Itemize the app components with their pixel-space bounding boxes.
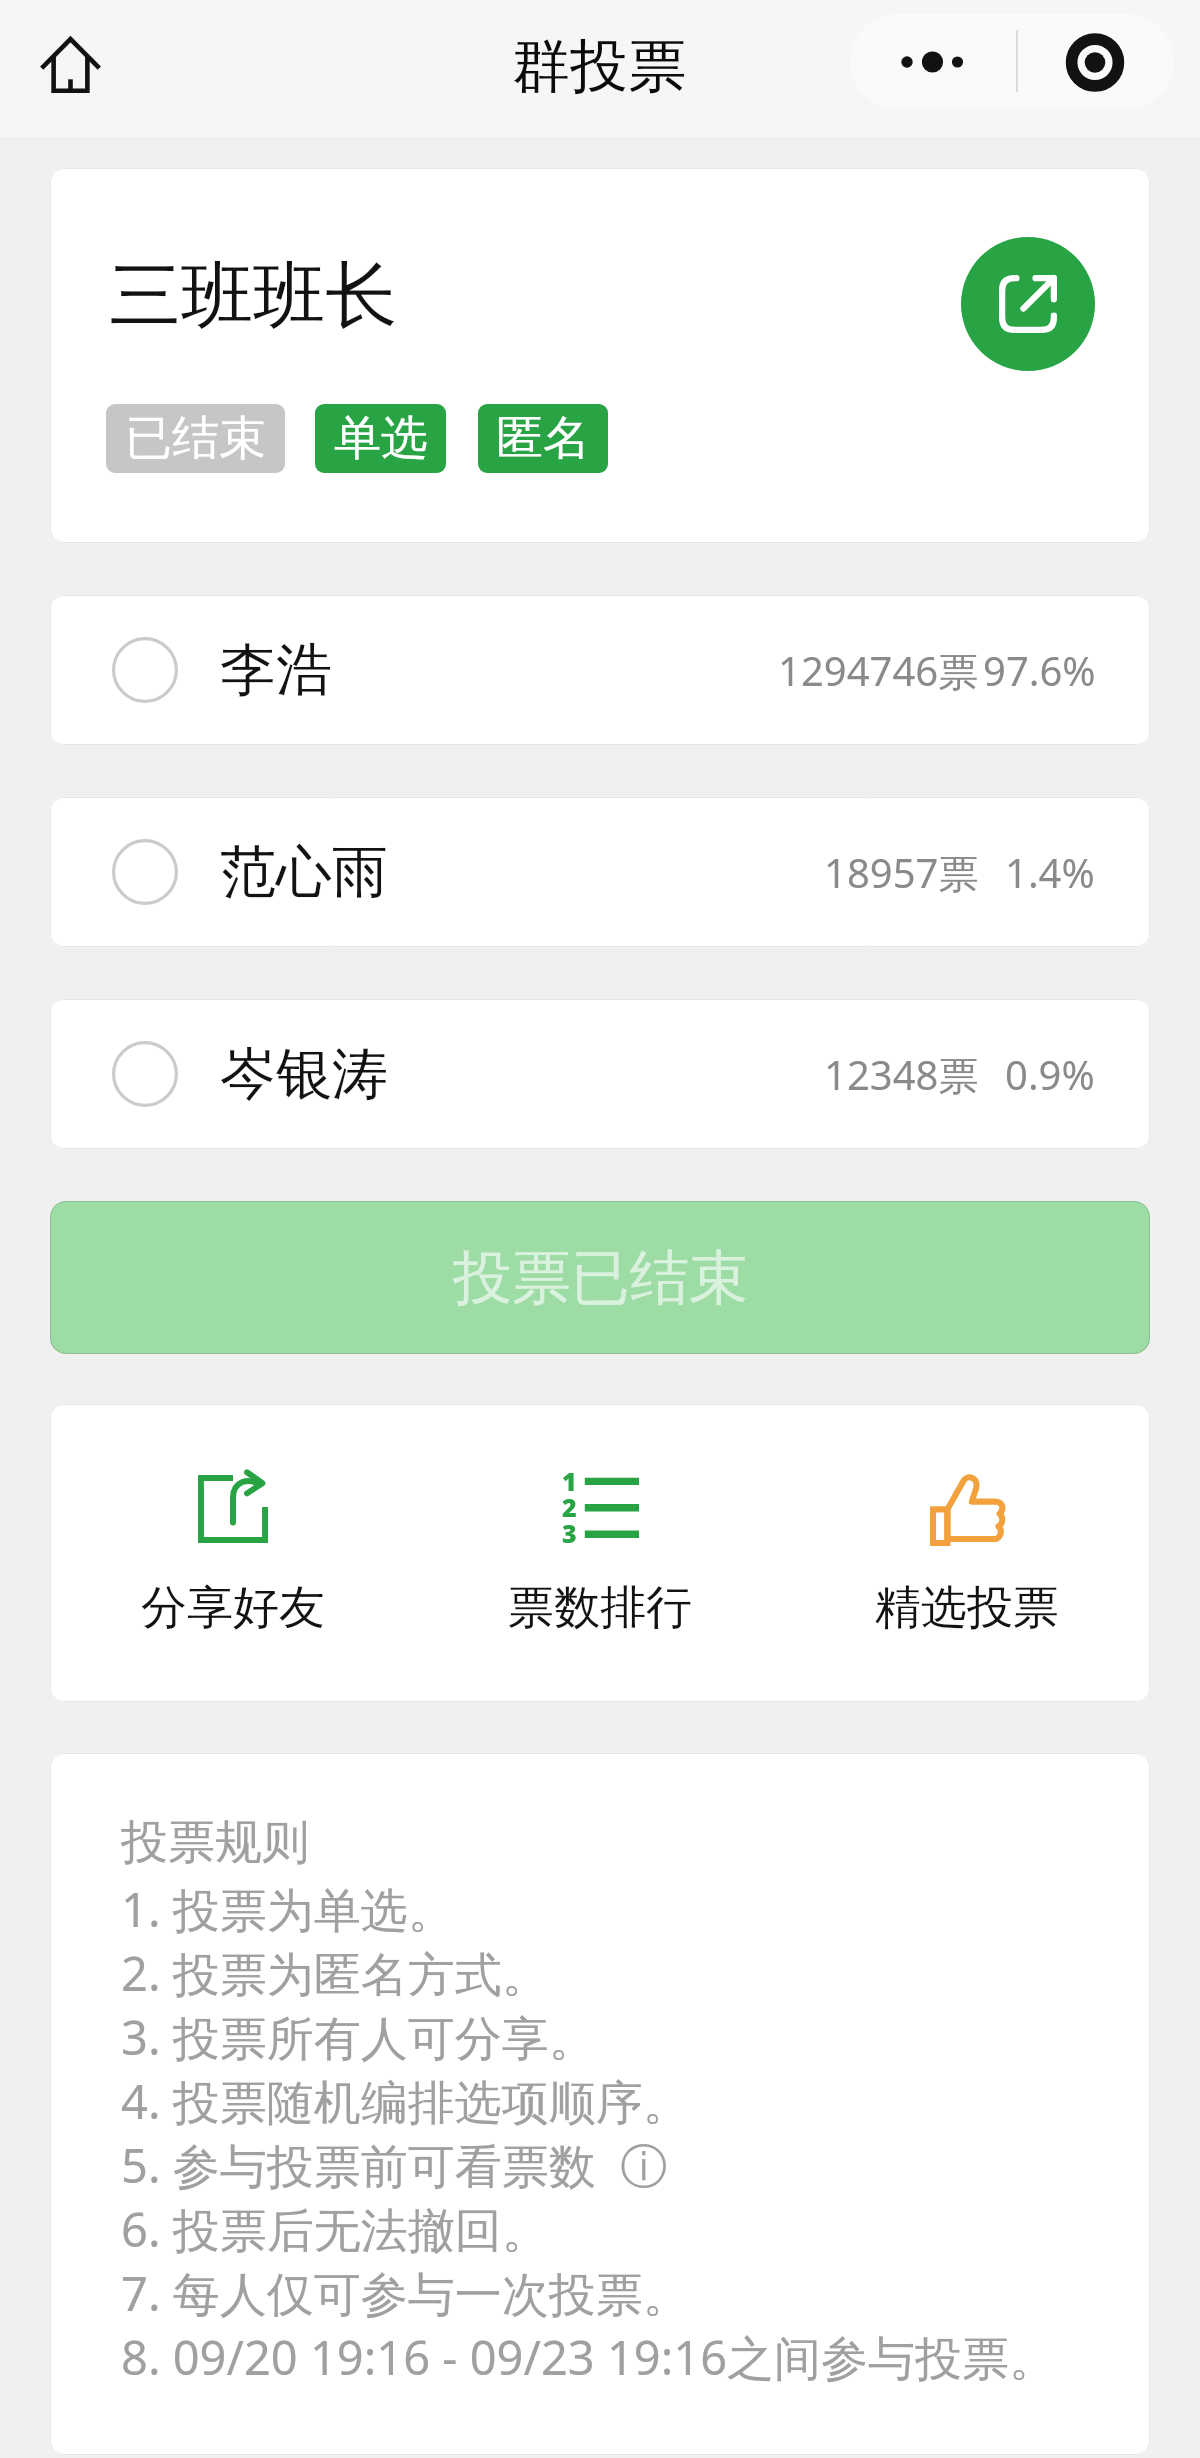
staticText: 李浩 [220,635,332,706]
staticText: 票数排行 [508,1579,692,1637]
staticText: 3. 投票所有人可分享。 [121,2005,596,2069]
button[interactable]: Home [36,31,104,97]
staticText: 单选 [334,409,428,468]
staticText: 97.6% [983,643,1095,697]
button[interactable]: 1 [416,1404,783,1702]
button[interactable]: 岑银涛 [50,999,1150,1149]
button[interactable]: 精选投票 [783,1404,1150,1702]
button[interactable]: 已结束 [106,404,285,473]
staticText: 分享好友 [141,1579,325,1637]
staticText: 2 [562,1490,577,1520]
staticText: 7. 每人仅可参与一次投票。 [121,2261,690,2325]
button[interactable]: 分享好友 [50,1404,416,1702]
staticText: 5. 参与投票前可看票数 ⓘ [121,2133,668,2197]
button[interactable]: 匿名 [478,404,608,473]
staticText: 投票已结束 [453,1241,748,1315]
button[interactable]: 投票已结束 [50,1201,1150,1354]
staticText: 岑银涛 [220,1039,388,1110]
staticText: 8. 09/20 19:16 - 09/23 19:16之间参与投票。 [121,2325,1057,2389]
staticText: 6. 投票后无法撤回。 [121,2197,549,2261]
staticText: 1 [562,1464,577,1494]
button[interactable]: 范心雨 [50,797,1150,947]
staticText: 群投票 [512,30,686,103]
button[interactable]: 单选 [315,404,446,473]
button[interactable]: 李浩 [50,595,1150,745]
staticText: 范心雨 [220,837,388,908]
staticText: 1. 投票为单选。 [121,1877,455,1941]
staticText: 2. 投票为匿名方式。 [121,1941,549,2005]
button[interactable]: More [850,14,1012,108]
staticText: 三班班长 [109,251,397,342]
staticText: 精选投票 [875,1579,1059,1637]
staticText: 匿名 [496,409,590,468]
button[interactable]: 三班班长 [50,168,1150,543]
button[interactable]: Share [961,237,1095,371]
staticText: 投票规则 [121,1813,309,1872]
staticText: 已结束 [125,409,266,468]
button[interactable]: Close [1014,14,1174,108]
staticText: 3 [562,1516,577,1546]
staticText: 0.9% [1005,1047,1095,1101]
staticText: 1.4% [1005,845,1095,899]
staticText: 12348票 [824,1047,979,1102]
staticText: 18957票 [824,845,979,900]
staticText: 1294746票 [778,643,979,698]
staticText: 4. 投票随机编排选项顺序。 [121,2069,690,2133]
